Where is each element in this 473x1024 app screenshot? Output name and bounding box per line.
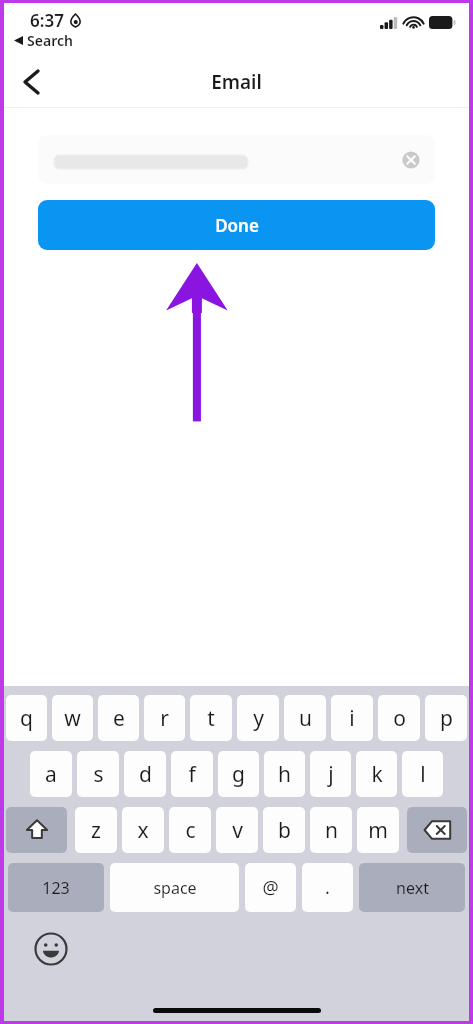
button[interactable]: d (124, 751, 166, 797)
button[interactable]: g (218, 751, 259, 797)
staticText: j (328, 760, 334, 789)
button[interactable]: Clear text (401, 150, 421, 170)
button[interactable]: Shift (6, 807, 67, 853)
staticText: 123 (42, 877, 70, 899)
staticText: a (45, 760, 57, 789)
button[interactable]: w (52, 695, 93, 741)
button[interactable]: x (122, 807, 164, 853)
button[interactable]: b (263, 807, 305, 853)
button[interactable]: Done (38, 200, 435, 250)
button[interactable]: Back (8, 59, 54, 105)
button[interactable]: l (402, 751, 443, 797)
button[interactable]: Backspace (407, 807, 467, 853)
staticText: s (93, 760, 104, 789)
staticText: z (91, 816, 101, 845)
staticText: n (325, 816, 338, 845)
button[interactable]: next (359, 863, 465, 912)
button[interactable]: c (169, 807, 211, 853)
button[interactable]: t (190, 695, 232, 741)
staticText: f (188, 760, 196, 789)
staticText: h (278, 760, 291, 789)
staticText: w (64, 704, 81, 733)
staticText: d (139, 760, 152, 789)
staticText: 6:37 (30, 9, 64, 32)
button[interactable]: n (310, 807, 352, 853)
staticText: . (325, 875, 330, 900)
button[interactable]: space (110, 863, 239, 912)
staticText: q (20, 704, 33, 733)
button[interactable]: e (98, 695, 139, 741)
button[interactable]: r (144, 695, 185, 741)
button[interactable]: 123 (8, 863, 104, 912)
button[interactable]: p (425, 695, 467, 741)
button[interactable]: y (237, 695, 279, 741)
button[interactable]: Clear text (38, 135, 435, 184)
staticText: b (278, 816, 291, 845)
staticText: next (396, 877, 429, 899)
staticText: p (440, 704, 453, 733)
staticText: x (137, 816, 149, 845)
button[interactable]: z (75, 807, 117, 853)
staticText: Email (211, 69, 262, 95)
staticText: t (207, 704, 215, 733)
staticText: m (368, 816, 388, 845)
button[interactable]: v (216, 807, 258, 853)
button[interactable]: a (30, 751, 72, 797)
button[interactable]: i (331, 695, 373, 741)
staticText: v (232, 816, 243, 845)
staticText: r (160, 704, 169, 733)
staticText: @ (262, 875, 279, 900)
button[interactable]: q (6, 695, 47, 741)
staticText: o (393, 704, 406, 733)
button[interactable]: h (264, 751, 305, 797)
staticText: space (153, 877, 197, 899)
button[interactable]: m (357, 807, 399, 853)
button[interactable]: Emoji keyboard (34, 932, 68, 966)
staticText: c (185, 816, 196, 845)
button[interactable]: . (302, 863, 353, 912)
staticText: e (113, 704, 125, 733)
staticText: k (371, 760, 383, 789)
button[interactable]: u (284, 695, 326, 741)
button[interactable]: j (310, 751, 351, 797)
staticText: i (349, 704, 355, 733)
button[interactable]: k (356, 751, 397, 797)
button[interactable]: f (171, 751, 213, 797)
button[interactable]: @ (245, 863, 296, 912)
staticText: Search (27, 31, 73, 50)
other: Shift (26, 819, 48, 841)
staticText: Done (215, 214, 259, 237)
staticText: y (253, 704, 264, 733)
staticText: u (299, 704, 312, 733)
button[interactable]: s (77, 751, 119, 797)
other: Backspace (424, 820, 451, 840)
staticText: g (232, 760, 245, 789)
staticText: l (420, 760, 426, 789)
button[interactable]: o (378, 695, 420, 741)
